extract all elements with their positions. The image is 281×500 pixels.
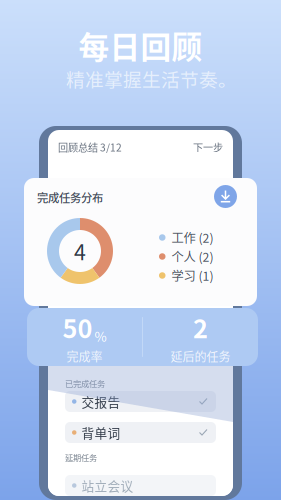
staticText: 完成任务分布 xyxy=(37,189,103,205)
staticText: 学习 (1) xyxy=(171,267,213,284)
staticText: 完成率 xyxy=(66,348,102,365)
staticText: 精准掌握生活节奏。 xyxy=(66,65,237,92)
staticText: 下一步 xyxy=(193,140,223,154)
staticText: 站立会议 xyxy=(81,476,133,495)
staticText: 背单词 xyxy=(81,423,120,442)
button[interactable]: 下载 xyxy=(214,185,237,208)
staticText: 回顾总结 3/12 xyxy=(58,140,122,154)
button[interactable]: 站立会议 xyxy=(65,475,216,496)
button[interactable]: 交报告 xyxy=(65,391,216,412)
staticText: 延后的任务 xyxy=(170,348,230,365)
staticText: 交报告 xyxy=(81,392,120,411)
button[interactable]: 下一步 xyxy=(190,135,226,159)
staticText: 已完成任务 xyxy=(65,377,105,389)
staticText: 2 xyxy=(193,309,208,346)
staticText: 50 xyxy=(62,309,92,346)
staticText: 每日回顾 xyxy=(78,23,202,67)
staticText: 工作 (2) xyxy=(171,229,213,246)
staticText: % xyxy=(94,326,106,346)
staticText: 4 xyxy=(74,236,86,266)
button[interactable]: 背单词 xyxy=(65,422,216,443)
staticText: 个人 (2) xyxy=(171,248,213,265)
staticText: 延期任务 xyxy=(65,451,97,463)
